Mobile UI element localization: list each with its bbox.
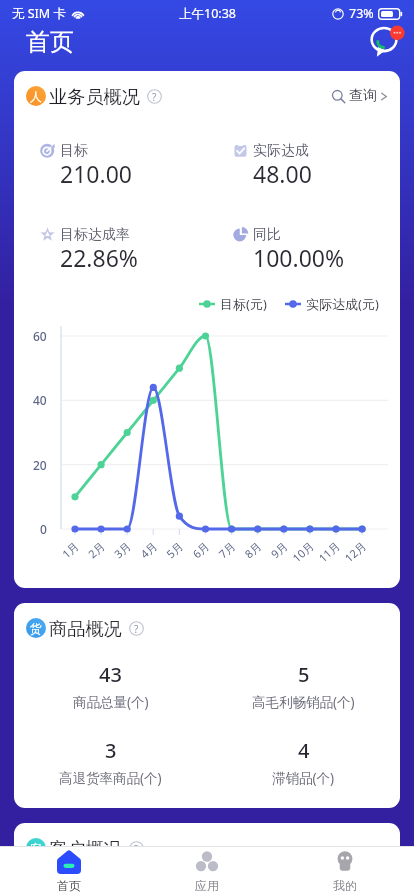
staticText: 实际达成	[253, 142, 309, 158]
staticText: 客户概况	[49, 837, 122, 860]
staticText: 应用	[195, 878, 219, 893]
staticText: 同比	[253, 226, 281, 242]
staticText: 上午10:38	[179, 5, 236, 22]
staticText: 查询	[349, 87, 377, 105]
staticText: 商品概况	[49, 617, 122, 640]
staticText: 业务员概况	[49, 85, 140, 108]
staticText: 高毛利畅销品(个)	[252, 693, 355, 711]
staticText: 22.86%	[60, 242, 138, 273]
staticText: ?	[134, 622, 139, 636]
staticText: 48.00	[253, 158, 312, 189]
staticText: ?	[134, 842, 139, 856]
staticText: 3	[105, 737, 117, 764]
staticText: 货	[30, 621, 42, 636]
staticText: 无 SIM 卡	[12, 5, 66, 22]
staticText: 高退货率商品(个)	[59, 769, 162, 787]
button[interactable]: Messages	[362, 28, 404, 70]
button[interactable]: 我的	[276, 847, 414, 896]
staticText: 首页	[57, 878, 81, 893]
staticText: 滞销品(个)	[272, 769, 335, 787]
staticText: 商品总量(个)	[73, 693, 149, 711]
staticText: 73%	[349, 5, 374, 22]
button[interactable]: 应用	[138, 847, 276, 896]
staticText: 人	[30, 89, 42, 104]
staticText: 目标(元)	[220, 295, 267, 313]
button[interactable]: 查询	[331, 83, 387, 109]
staticText: 43	[99, 661, 122, 688]
staticText: 我的	[333, 878, 357, 893]
staticText: 210.00	[60, 158, 132, 189]
staticText: ?	[152, 90, 157, 104]
button[interactable]: 首页	[0, 847, 138, 896]
staticText: 目标达成率	[60, 226, 130, 242]
staticText: 目标	[60, 142, 88, 158]
staticText: 100.00%	[253, 242, 345, 273]
staticText: 客	[30, 841, 42, 856]
staticText: 5	[298, 661, 310, 688]
staticText: 实际达成(元)	[306, 295, 379, 313]
staticText: 首页	[26, 27, 74, 57]
staticText: 4	[298, 737, 310, 764]
